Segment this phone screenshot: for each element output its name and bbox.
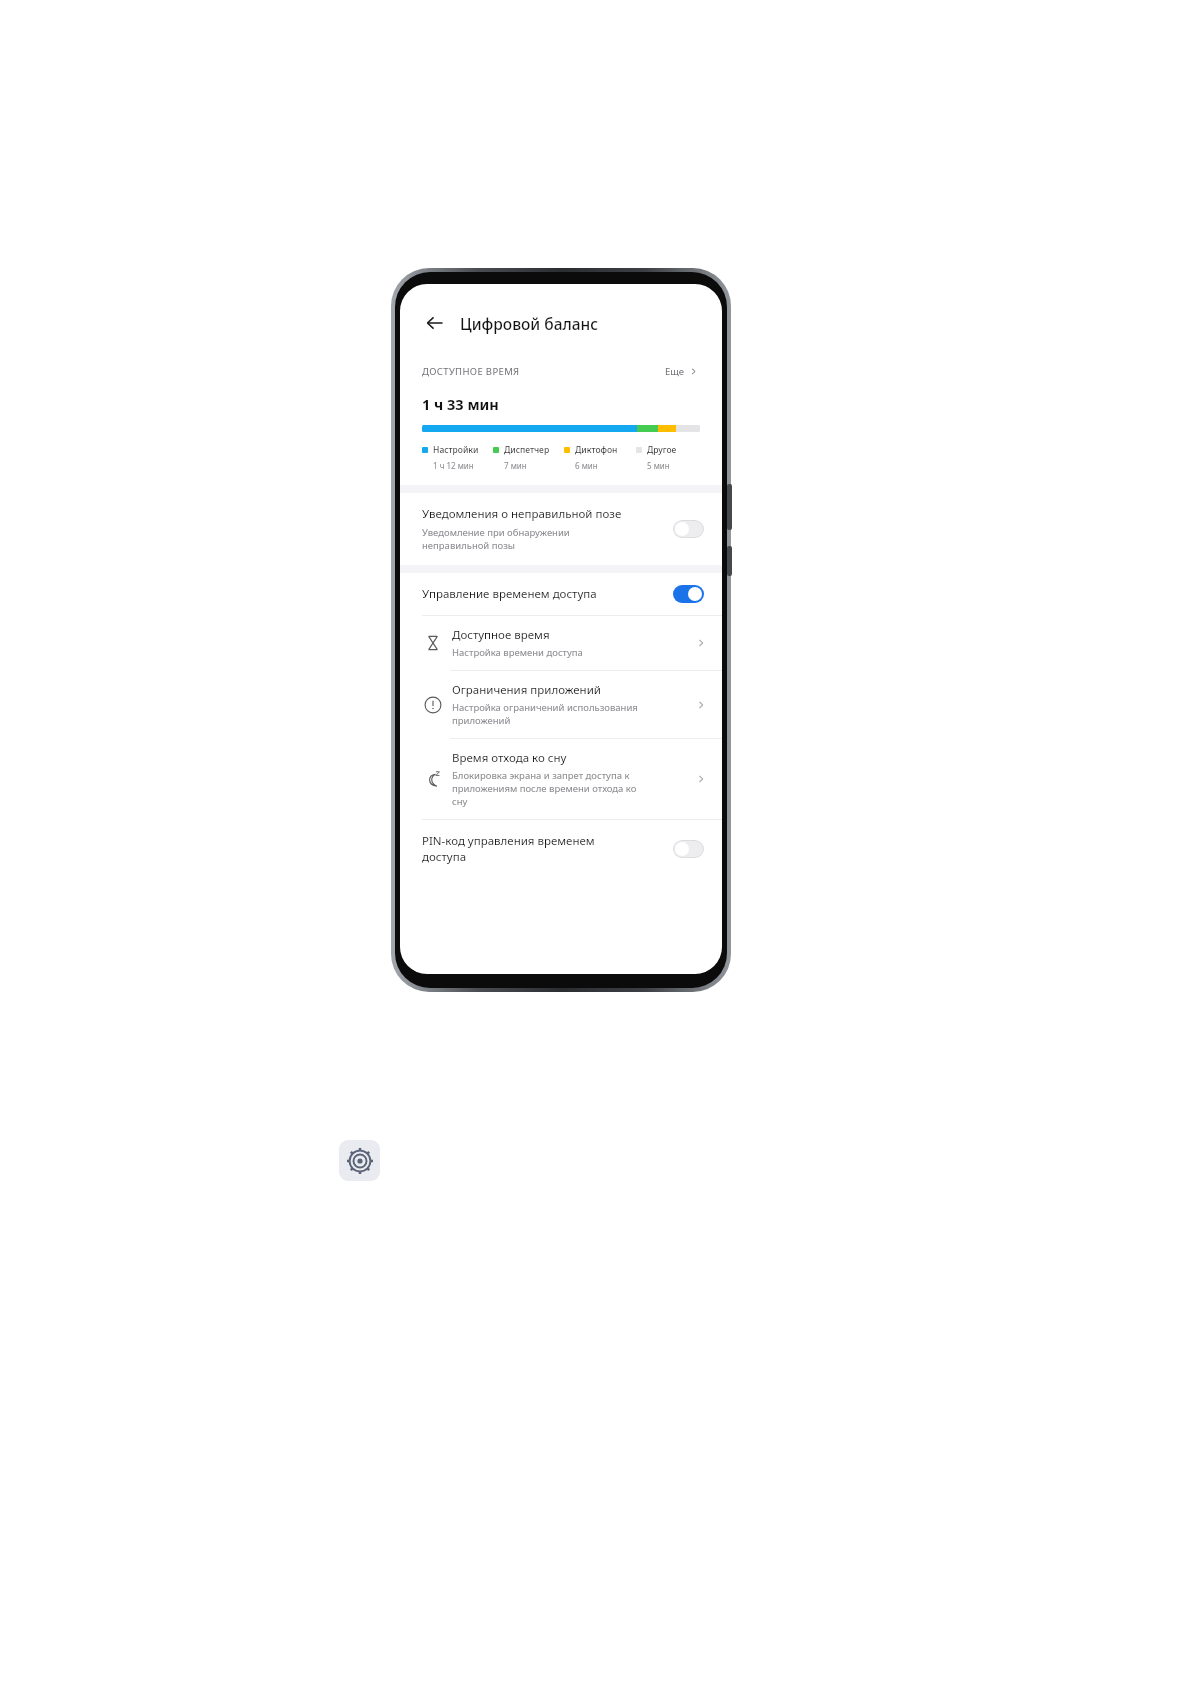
staticText: Уведомления о неправильной позе xyxy=(422,506,622,522)
staticText: Настройки xyxy=(433,444,479,456)
staticText: ДОСТУПНОЕ ВРЕМЯ xyxy=(422,365,520,378)
staticText: Ограничения приложений xyxy=(452,682,601,698)
staticText: Время отхода ко сну xyxy=(452,750,567,766)
staticText: Другое xyxy=(647,444,677,456)
staticText: 7 мин xyxy=(504,460,527,471)
button[interactable]: Настройки xyxy=(339,1140,380,1181)
button[interactable]: Еще xyxy=(663,362,700,381)
button[interactable]: PIN-код управления временем доступа xyxy=(400,820,722,877)
button[interactable]: Назад xyxy=(420,308,450,338)
staticText: Цифровой баланс xyxy=(460,313,599,334)
button[interactable]: Доступное время xyxy=(400,616,722,670)
button[interactable]: Ограничения приложений xyxy=(400,671,722,738)
staticText: Диспетчер xyxy=(504,444,550,456)
button[interactable]: Включено xyxy=(673,585,704,603)
staticText: 5 мин xyxy=(647,460,670,471)
staticText: 1 ч 33 мин xyxy=(422,394,499,414)
button[interactable]: Время отхода ко сну xyxy=(400,739,722,819)
staticText: Настройка ограничений использования прил… xyxy=(452,701,638,727)
button[interactable]: Управление временем доступа xyxy=(400,573,722,615)
staticText: Блокировка экрана и запрет доступа к при… xyxy=(452,769,637,808)
staticText: PIN-код управления временем доступа xyxy=(422,833,663,864)
staticText: Диктофон xyxy=(575,444,618,456)
staticText: 1 ч 12 мин xyxy=(433,460,474,471)
staticText: Уведомление при обнаружении неправильной… xyxy=(422,526,570,552)
staticText: 6 мин xyxy=(575,460,598,471)
staticText: Управление временем доступа xyxy=(422,586,663,602)
staticText: Доступное время xyxy=(452,627,550,643)
button[interactable]: Выключено xyxy=(673,840,704,858)
button[interactable]: Выключено xyxy=(673,520,704,538)
button[interactable]: Уведомления о неправильной позе xyxy=(400,493,722,565)
staticText: Настройка времени доступа xyxy=(452,646,583,659)
staticText: Еще xyxy=(665,365,685,378)
